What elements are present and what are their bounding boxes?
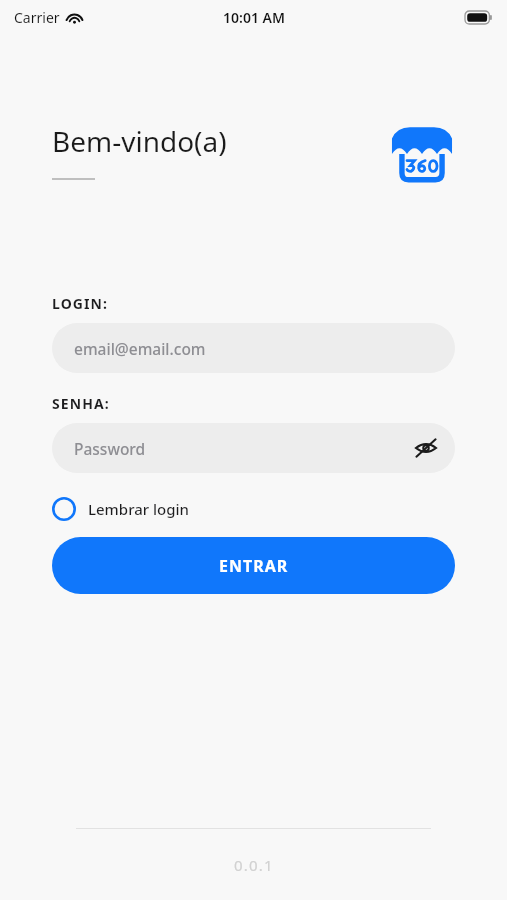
button[interactable]: ENTRAR — [52, 537, 455, 594]
button[interactable]: Show password — [411, 433, 441, 463]
button[interactable]: email@email.com — [52, 323, 455, 373]
staticText: Lembrar login — [88, 499, 189, 519]
staticText: email@email.com — [74, 338, 206, 359]
staticText: 10:01 AM — [223, 8, 285, 27]
staticText: 0.0.1 — [234, 855, 274, 875]
staticText: SENHA: — [52, 394, 110, 413]
button[interactable]: Lembrar login — [52, 495, 189, 523]
staticText: Carrier — [14, 8, 60, 27]
other: Logo 360 — [389, 118, 455, 184]
staticText: ENTRAR — [219, 555, 289, 577]
staticText: LOGIN: — [52, 294, 109, 313]
button[interactable]: Password — [52, 423, 455, 473]
staticText: Bem-vindo(a) — [52, 122, 227, 160]
staticText: Password — [74, 438, 146, 459]
